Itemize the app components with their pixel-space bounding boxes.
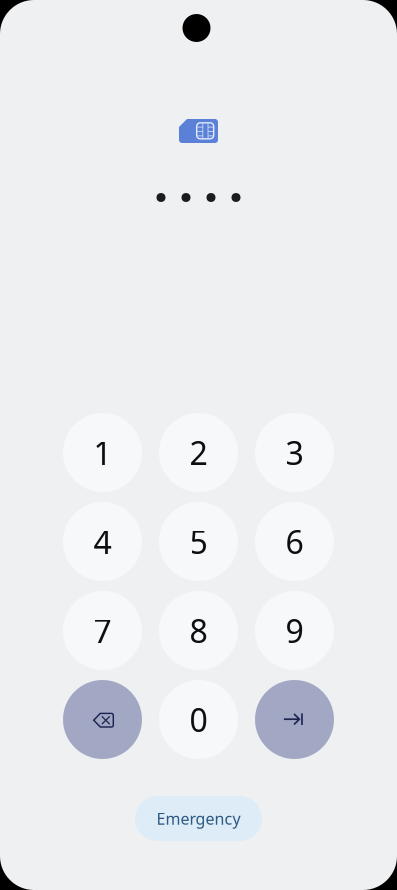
staticText: 0: [189, 698, 207, 741]
button[interactable]: 3: [255, 413, 334, 492]
button[interactable]: 0: [159, 680, 238, 759]
button[interactable]: 2: [159, 413, 238, 492]
staticText: Emergency: [156, 808, 240, 829]
staticText: 2: [189, 431, 207, 474]
staticText: 8: [189, 609, 207, 652]
staticText: 3: [285, 431, 303, 474]
button[interactable]: 4: [63, 502, 142, 581]
button[interactable]: Delete: [63, 680, 142, 759]
button[interactable]: 1: [63, 413, 142, 492]
staticText: 7: [93, 609, 111, 652]
button[interactable]: 6: [255, 502, 334, 581]
button[interactable]: 5: [159, 502, 238, 581]
button[interactable]: Submit PIN: [255, 680, 334, 759]
staticText: 6: [285, 520, 303, 563]
button[interactable]: 8: [159, 591, 238, 670]
staticText: 9: [285, 609, 303, 652]
button[interactable]: Emergency: [135, 796, 262, 841]
staticText: 1: [93, 431, 111, 474]
button[interactable]: 7: [63, 591, 142, 670]
button[interactable]: 9: [255, 591, 334, 670]
staticText: 4: [93, 520, 111, 563]
staticText: 5: [189, 520, 207, 563]
